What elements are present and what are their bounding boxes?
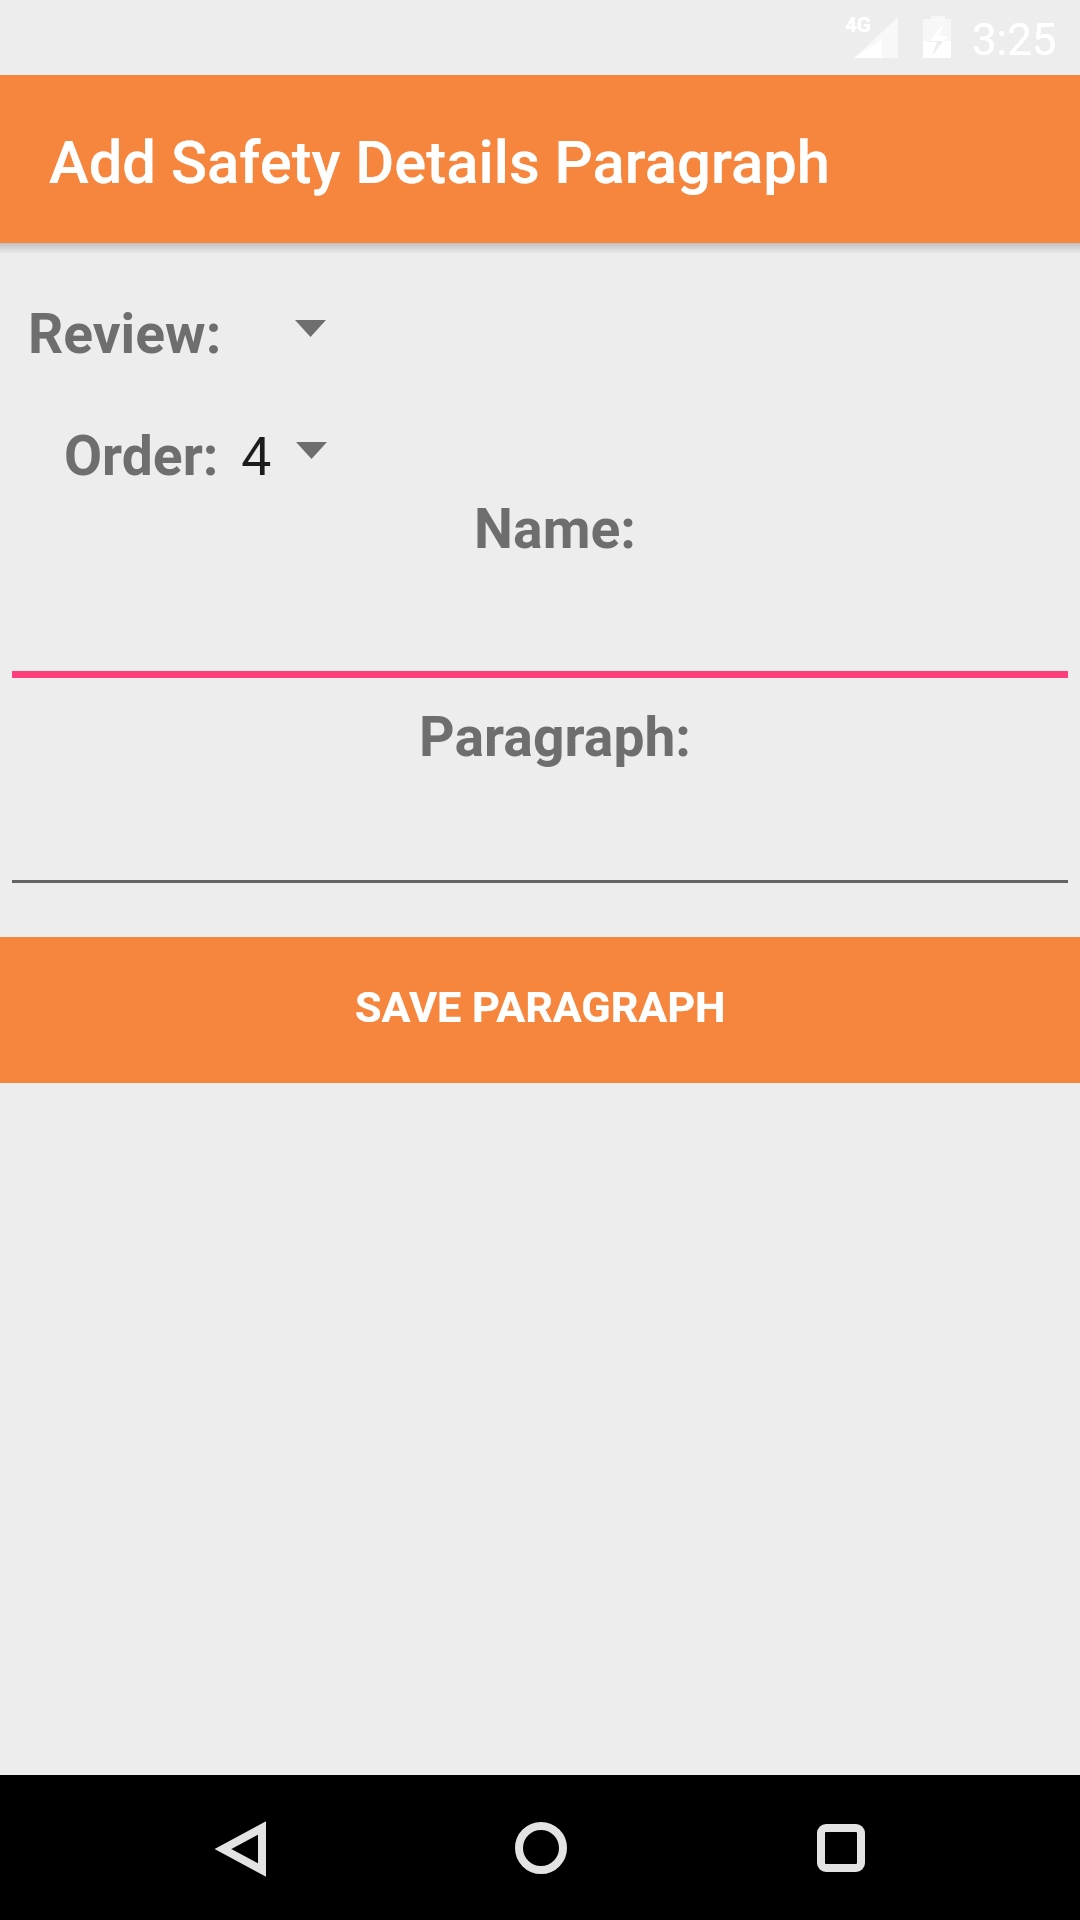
button[interactable]: Paragraph: — [12, 696, 1068, 883]
button[interactable]: Back — [167, 1775, 312, 1920]
staticText: 4G — [845, 13, 871, 37]
staticText: Name: — [30, 497, 1080, 562]
button[interactable]: Recents — [768, 1775, 913, 1920]
staticText: SAVE PARAGRAPH — [355, 982, 726, 1033]
staticText: 3:25 — [972, 14, 1057, 65]
staticText: 4 — [241, 425, 272, 488]
button[interactable]: Review: — [28, 302, 326, 367]
staticText: Add Safety Details Paragraph — [49, 128, 830, 198]
button[interactable]: SAVE PARAGRAPH — [0, 937, 1080, 1083]
staticText: Order: — [64, 424, 219, 489]
button[interactable]: Home — [468, 1775, 613, 1920]
staticText: Paragraph: — [30, 705, 1080, 770]
staticText: Review: — [28, 302, 222, 367]
button[interactable]: Order: — [64, 424, 327, 489]
button[interactable]: Name: — [12, 488, 1068, 678]
